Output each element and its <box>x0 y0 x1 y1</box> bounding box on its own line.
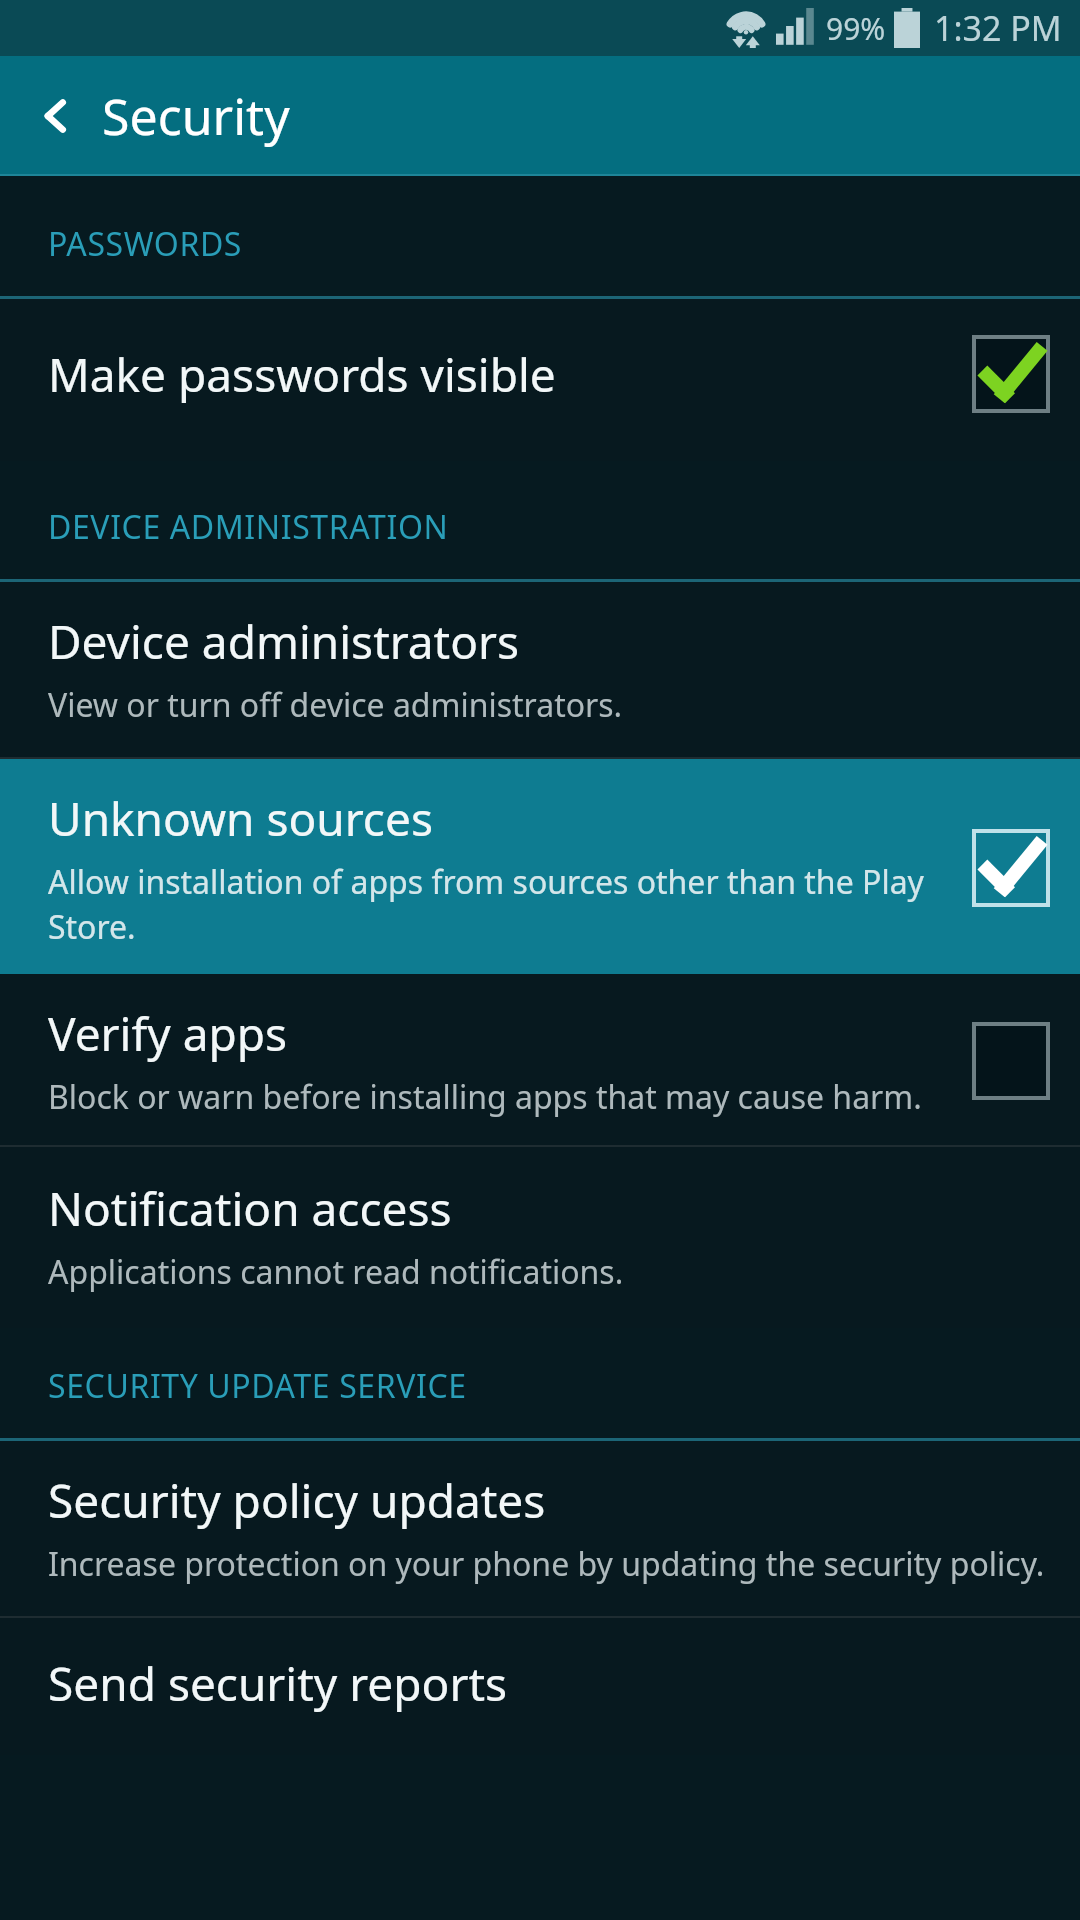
button[interactable]: Back <box>0 56 1080 176</box>
staticText: DEVICE ADMINISTRATION <box>48 505 449 549</box>
staticText: 99% <box>826 8 886 49</box>
button[interactable]: Toggle checkbox <box>972 1022 1050 1100</box>
staticText: Allow installation of apps from sources … <box>48 860 952 948</box>
staticText: Unknown sources <box>48 787 433 850</box>
staticText: Verify apps <box>48 1002 288 1065</box>
button[interactable]: Send security reports <box>0 1618 1080 1755</box>
staticText: Notification access <box>48 1177 452 1240</box>
button[interactable]: Toggle checkbox <box>972 335 1050 413</box>
staticText: SECURITY UPDATE SERVICE <box>48 1364 467 1408</box>
staticText: Send security reports <box>48 1652 508 1715</box>
staticText: Security policy updates <box>48 1469 546 1532</box>
button[interactable]: Security policy updates <box>0 1441 1080 1616</box>
button[interactable]: Device administrators <box>0 582 1080 757</box>
button[interactable]: Make passwords visible <box>0 299 1080 461</box>
staticText: View or turn off device administrators. <box>48 683 623 727</box>
button[interactable]: Unknown sources <box>0 759 1080 974</box>
staticText: PASSWORDS <box>48 222 243 266</box>
staticText: Device administrators <box>48 610 520 673</box>
staticText: Make passwords visible <box>48 343 556 406</box>
staticText: 1:32 PM <box>934 5 1062 51</box>
staticText: Applications cannot read notifications. <box>48 1250 624 1294</box>
staticText: Security <box>102 82 290 150</box>
button[interactable]: Notification access <box>0 1147 1080 1328</box>
button[interactable]: Toggle checkbox <box>972 829 1050 907</box>
button[interactable]: Verify apps <box>0 974 1080 1145</box>
staticText: Increase protection on your phone by upd… <box>48 1542 1045 1586</box>
other: Back <box>28 88 84 144</box>
staticText: Block or warn before installing apps tha… <box>48 1075 922 1119</box>
